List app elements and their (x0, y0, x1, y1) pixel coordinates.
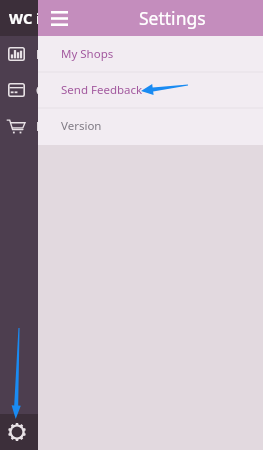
button[interactable]: Menu (38, 0, 74, 36)
staticText: Settings (139, 6, 206, 30)
button[interactable]: Reports (0, 36, 38, 72)
button[interactable]: Cards (0, 72, 38, 108)
staticText: Send Feedback (61, 82, 143, 98)
staticText: Orders (36, 82, 75, 98)
button[interactable]: Send Feedback (38, 72, 263, 108)
staticText: WC invoice (9, 8, 38, 28)
button[interactable]: Orders (0, 108, 38, 144)
staticText: Reports (36, 46, 80, 62)
button[interactable]: My Shops (38, 36, 263, 72)
staticText: My Shops (61, 46, 114, 62)
button[interactable]: Version (38, 108, 263, 144)
staticText: Version (61, 118, 102, 134)
button[interactable]: Settings (0, 414, 38, 450)
staticText: Products (36, 118, 86, 134)
